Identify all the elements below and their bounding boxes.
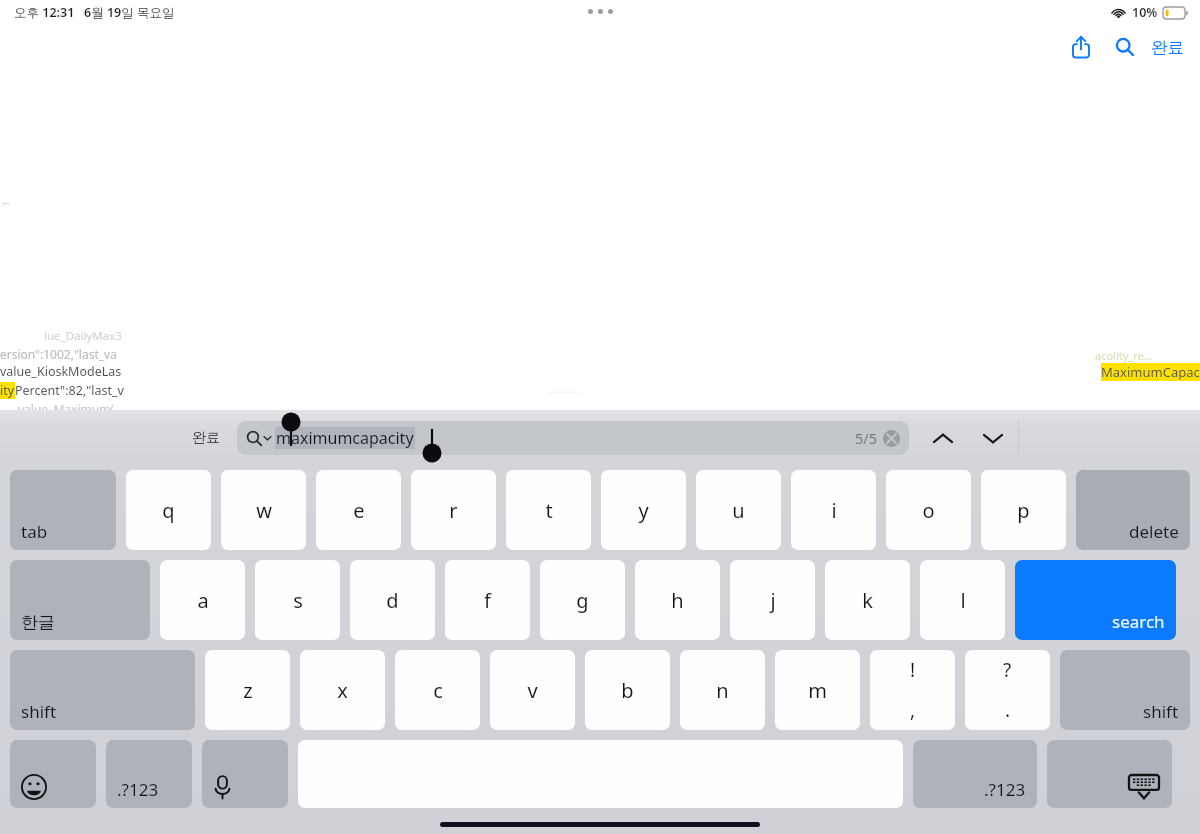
button[interactable]: Share	[1059, 25, 1103, 69]
staticText: value_KioskModeLas	[0, 363, 122, 380]
staticText: lue_DailyMax3	[44, 328, 122, 344]
button[interactable]: r	[411, 470, 496, 550]
staticText: ⌐	[2, 198, 12, 211]
staticText: p	[1017, 497, 1030, 524]
button[interactable]: search	[1015, 560, 1176, 640]
button[interactable]: c	[395, 650, 480, 730]
staticText: 6월 19일 목요일	[84, 4, 175, 21]
button[interactable]: .?123	[106, 740, 192, 808]
staticText: l	[960, 587, 966, 614]
staticText: .?123	[984, 778, 1026, 801]
button[interactable]: n	[680, 650, 765, 730]
button[interactable]: d	[350, 560, 435, 640]
button[interactable]	[202, 740, 288, 808]
staticText: !	[910, 657, 916, 683]
button[interactable]: j	[730, 560, 815, 640]
staticText: shift	[1143, 700, 1179, 723]
button[interactable]: tab	[10, 470, 116, 550]
staticText: k	[862, 587, 873, 614]
staticText: c	[433, 677, 443, 704]
staticText: x	[337, 677, 348, 704]
button[interactable]: i	[791, 470, 876, 550]
staticText: 한글	[21, 612, 55, 633]
button[interactable]: x	[300, 650, 385, 730]
staticText: 오후 12:31	[14, 4, 75, 21]
button[interactable]: 완료	[1151, 37, 1184, 58]
staticText: t	[545, 497, 553, 524]
staticText: .	[1005, 697, 1011, 723]
staticText: shift	[21, 700, 57, 723]
staticText: u	[732, 497, 745, 524]
button[interactable]: Previous result	[921, 416, 965, 460]
button[interactable]: .?123	[913, 740, 1037, 808]
staticText: 5/5	[855, 428, 877, 448]
staticText: acolity_re…	[1095, 348, 1153, 363]
button[interactable]: y	[601, 470, 686, 550]
button[interactable]: q	[126, 470, 211, 550]
staticText: i	[831, 497, 837, 524]
button[interactable]: e	[316, 470, 401, 550]
button[interactable]: o	[886, 470, 971, 550]
staticText: …………	[550, 382, 582, 396]
staticText: v	[527, 677, 538, 704]
button[interactable]: z	[205, 650, 290, 730]
button[interactable]: shift	[10, 650, 195, 730]
staticText: q	[162, 497, 175, 524]
button[interactable]: 완료	[192, 429, 220, 447]
staticText: n	[716, 677, 729, 704]
staticText: s	[293, 587, 303, 614]
staticText: o	[922, 497, 935, 524]
staticText: ersion":1002,"last_va	[0, 346, 117, 362]
button[interactable]: v	[490, 650, 575, 730]
button[interactable]: ?	[965, 650, 1050, 730]
button[interactable]: s	[255, 560, 340, 640]
button[interactable]: l	[920, 560, 1005, 640]
button[interactable]: w	[221, 470, 306, 550]
button[interactable]: 한글	[10, 560, 150, 640]
staticText: a	[197, 587, 209, 614]
staticText: Percent":82,"last_v	[15, 382, 124, 399]
staticText: value_Maximum(	[18, 401, 114, 417]
button[interactable]: u	[696, 470, 781, 550]
staticText: m	[808, 677, 827, 704]
staticText: g	[576, 587, 589, 614]
button[interactable]: g	[540, 560, 625, 640]
staticText: j	[770, 587, 776, 614]
button[interactable]: f	[445, 560, 530, 640]
button[interactable]: t	[506, 470, 591, 550]
button[interactable]: shift	[1060, 650, 1190, 730]
staticText: r	[449, 497, 458, 524]
staticText: search	[1112, 610, 1165, 633]
button[interactable]: delete	[1076, 470, 1190, 550]
staticText: d	[386, 587, 399, 614]
button[interactable]: h	[635, 560, 720, 640]
staticText: ?	[1003, 657, 1012, 683]
button[interactable]: p	[981, 470, 1066, 550]
staticText: delete	[1129, 520, 1179, 543]
staticText: ity	[0, 382, 15, 399]
staticText: f	[484, 587, 491, 614]
button[interactable]: Next result	[971, 416, 1015, 460]
button[interactable]: maximumcapacity	[237, 421, 909, 455]
staticText: b	[621, 677, 634, 704]
staticText: z	[243, 677, 253, 704]
staticText: 완료	[1151, 37, 1184, 58]
staticText: tab	[21, 520, 48, 543]
button[interactable]: b	[585, 650, 670, 730]
staticText: w	[256, 497, 272, 524]
button[interactable]: m	[775, 650, 860, 730]
staticText: .?123	[117, 778, 159, 801]
button[interactable]: k	[825, 560, 910, 640]
staticText: y	[638, 497, 649, 524]
button[interactable]: Search	[1103, 25, 1147, 69]
button[interactable]: Hide keyboard	[1047, 740, 1172, 808]
staticText: 10%	[1132, 4, 1158, 21]
button[interactable]: !	[870, 650, 955, 730]
button[interactable]: Clear search	[883, 430, 900, 447]
staticText: maximumcapacity	[276, 427, 414, 449]
button[interactable]: a	[160, 560, 245, 640]
button[interactable]	[10, 740, 96, 808]
staticText: e	[353, 497, 365, 524]
staticText: 완료	[192, 429, 220, 447]
